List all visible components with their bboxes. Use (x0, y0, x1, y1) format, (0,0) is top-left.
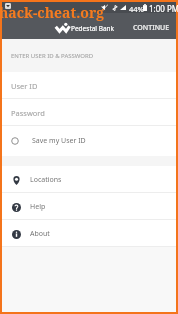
button[interactable]: Save my User ID (2, 126, 176, 156)
button[interactable]: About (2, 220, 176, 247)
staticText: 44% (129, 4, 144, 14)
staticText: Password (11, 108, 45, 118)
staticText: Save my User ID (32, 136, 86, 146)
staticText: Pedestal Bank (71, 24, 115, 33)
staticText: hack-cheat.org (0, 3, 105, 22)
staticText: 1:00 PM (149, 3, 178, 14)
staticText: Locations (30, 175, 62, 185)
button[interactable]: User ID (2, 72, 176, 99)
button[interactable]: Help (2, 193, 176, 220)
staticText: User ID (11, 81, 38, 91)
staticText: ENTER USER ID & PASSWORD (11, 52, 94, 60)
staticText: CONTINUE (133, 23, 170, 33)
staticText: Help (30, 202, 46, 212)
button[interactable]: Locations (2, 166, 176, 193)
staticText: About (30, 229, 50, 239)
button[interactable]: CONTINUE (123, 16, 176, 40)
button[interactable]: Password (2, 99, 176, 126)
